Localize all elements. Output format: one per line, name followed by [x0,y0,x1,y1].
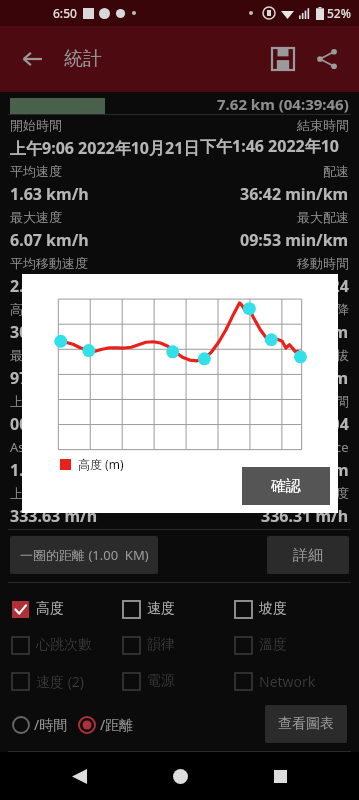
button[interactable]: Back [10,37,54,81]
staticText: 高度上升 [10,301,62,317]
staticText: 6.07 km/h [10,229,89,251]
staticText: 上午9:06 2022年10月21日 [10,137,200,159]
staticText: 詳細 [293,546,323,565]
button[interactable]: Save [261,37,305,81]
button[interactable]: 詳細 [267,536,349,574]
staticText: 平均移動速度 [10,255,88,271]
button[interactable]: Home [158,754,202,798]
staticText: 心跳次數 [36,636,92,654]
staticText: 下降速度 [297,485,349,501]
staticText: 查看圖表 [278,715,334,733]
staticText: 6:50 [53,5,77,21]
button[interactable]: 坡度 [235,600,347,618]
staticText: 電源 [147,672,175,690]
staticText: 最高海拔 [10,347,62,363]
button[interactable]: 韻律 [123,636,235,654]
staticText: 高度下降 [297,301,349,317]
staticText: 01:06:04 [285,413,349,435]
button[interactable]: 心跳次數 [12,636,123,654]
staticText: 52% [327,5,351,21]
staticText: 300 m [10,321,58,343]
staticText: 下降時間 [297,393,349,409]
button[interactable]: 確認 [242,467,330,505]
staticText: 統計 [64,47,102,71]
button[interactable]: 速度 (2) [12,672,123,691]
staticText: 440 m [301,367,349,389]
staticText: /時間 [34,715,68,734]
staticText: 09:53 min/km [240,229,349,251]
staticText: 333.63 m/h [10,505,98,527]
staticText: Descent Pace [267,438,349,456]
staticText: 最低海拔 [297,347,349,363]
staticText: 最大配速 [297,209,349,225]
button[interactable]: /距離 [78,715,134,734]
staticText: Network [259,672,316,691]
staticText: 移動時間 [297,255,349,271]
staticText: 坡度 [259,600,287,618]
staticText: 平均速度 [10,163,62,179]
button[interactable]: Back [57,754,101,798]
staticText: 速度 (2) [36,672,85,691]
button[interactable]: /時間 [12,715,68,734]
staticText: 1.80 km [10,459,72,481]
button[interactable]: Recents [258,754,302,798]
staticText: 一圈的距離 (1.00 KM) [20,546,149,564]
staticText: 高度 [36,600,64,618]
staticText: 開始時間 [10,117,62,133]
staticText: 1.92 km [287,459,349,481]
staticText: 結束時間 [297,117,349,133]
staticText: 上升時間 [10,393,62,409]
staticText: /距離 [100,715,134,734]
button[interactable]: 一圈的距離 (1.00 KM) [10,536,158,574]
button[interactable]: Network [235,672,347,691]
staticText: 03:17:24 [285,275,349,297]
staticText: 00:59:48 [10,413,74,435]
staticText: 336.31 m/h [261,505,349,527]
staticText: 976 m [10,367,58,389]
staticText: Ascent Pace [10,438,83,456]
button[interactable]: Share [305,37,349,81]
staticText: 配速 [323,163,349,179]
staticText: 下午1:46 2022年10月21日 [200,135,349,161]
staticText: 36:42 min/km [240,183,349,205]
staticText: 1.63 km/h [10,183,89,205]
staticText: 溫度 [259,636,287,654]
staticText: 2.31 km/h [10,275,89,297]
staticText: 最大速度 [10,209,62,225]
staticText: 上升速度 [10,485,62,501]
staticText: 韻律 [147,636,175,654]
button[interactable]: 速度 [123,600,235,618]
staticText: 7.62 km (04:39:46) [217,94,349,114]
staticText: 310 m [301,321,349,343]
button[interactable]: 高度 [12,600,123,618]
staticText: 速度 [147,600,175,618]
button[interactable]: 查看圖表 [265,705,347,743]
button[interactable]: 溫度 [235,636,347,654]
button[interactable]: 電源 [123,672,235,690]
staticText: 高度 (m) [78,456,124,472]
staticText: 確認 [271,477,301,496]
